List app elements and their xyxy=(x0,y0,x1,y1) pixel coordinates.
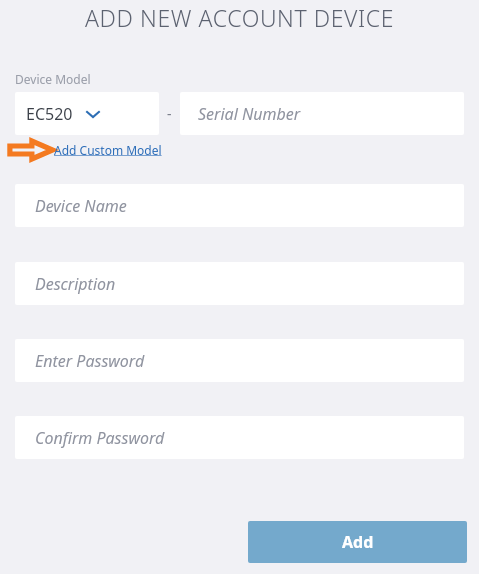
staticText: Description xyxy=(35,273,116,295)
button[interactable]: Add Custom Model xyxy=(54,141,162,158)
button[interactable]: Description xyxy=(15,262,464,305)
staticText: Add Custom Model xyxy=(54,142,162,158)
button[interactable]: Add xyxy=(248,521,467,563)
button[interactable]: Serial Number xyxy=(180,92,464,135)
button[interactable]: Enter Password xyxy=(15,339,464,382)
staticText: - xyxy=(167,104,172,123)
staticText: Serial Number xyxy=(198,103,301,125)
staticText: Device Model xyxy=(15,71,91,87)
staticText: Confirm Password xyxy=(35,427,165,449)
staticText: Device Name xyxy=(35,195,127,217)
staticText: Add xyxy=(342,531,374,553)
staticText: ADD NEW ACCOUNT DEVICE xyxy=(85,2,395,32)
staticText: EC520 xyxy=(26,103,73,125)
button[interactable]: Device Name xyxy=(15,184,464,227)
button[interactable]: Confirm Password xyxy=(15,416,464,459)
button[interactable]: Device model dropdown xyxy=(15,92,159,135)
other: Pointer to add custom model xyxy=(9,140,53,160)
staticText: Enter Password xyxy=(35,350,145,372)
